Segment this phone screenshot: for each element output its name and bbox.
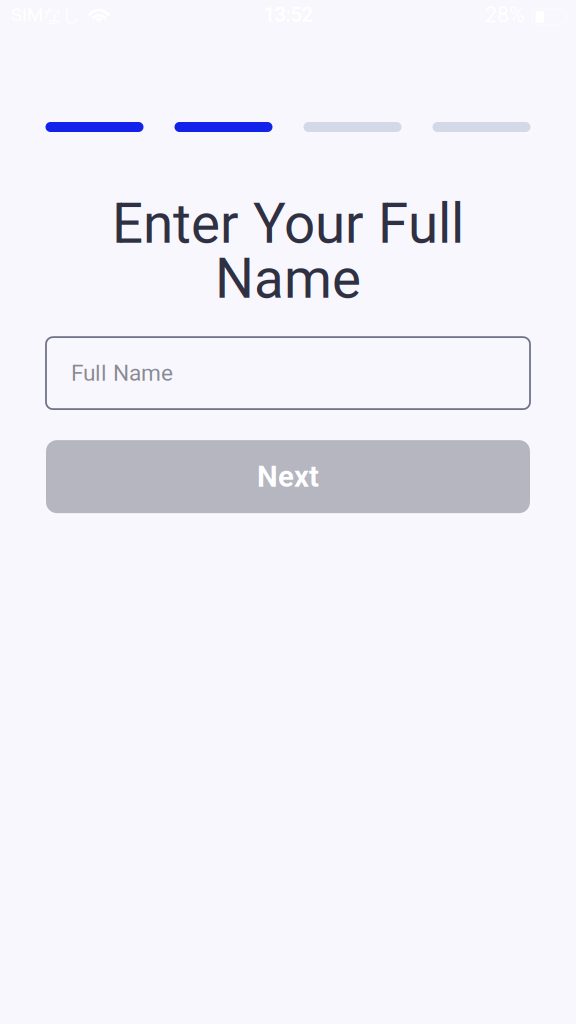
staticText: Enter Your Full xyxy=(112,192,464,256)
button[interactable]: Next xyxy=(46,440,530,513)
staticText: 13:52 xyxy=(263,3,312,27)
staticText: Next xyxy=(257,459,319,494)
button[interactable]: Full Name xyxy=(46,337,530,409)
staticText: Full Name xyxy=(71,360,173,386)
staticText: Name xyxy=(215,247,361,311)
